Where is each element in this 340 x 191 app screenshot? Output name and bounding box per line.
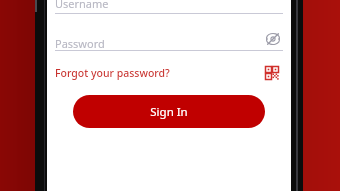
button[interactable]: Password — [55, 33, 283, 51]
staticText: Sign In — [150, 104, 188, 120]
staticText: Username — [55, 0, 109, 10]
button[interactable]: Scan QR code — [262, 63, 282, 83]
button[interactable]: Sign In — [73, 95, 265, 128]
staticText: Password — [55, 36, 105, 51]
button[interactable]: Username — [55, 0, 283, 14]
button[interactable]: Forgot your password? — [55, 64, 170, 82]
staticText: Forgot your password? — [55, 66, 170, 80]
button[interactable]: Show password — [263, 29, 283, 49]
